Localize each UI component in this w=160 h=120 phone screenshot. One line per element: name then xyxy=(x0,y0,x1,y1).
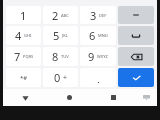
staticText: ABC xyxy=(61,13,69,18)
button[interactable]: *# xyxy=(6,68,41,87)
button[interactable]: 8 xyxy=(43,47,78,66)
staticText: 5 xyxy=(53,28,60,43)
button[interactable]: Switch keyboard xyxy=(135,89,157,106)
staticText: 1 xyxy=(20,8,27,23)
button[interactable]: 7 xyxy=(6,47,41,66)
staticText: MNO xyxy=(98,33,108,38)
button[interactable]: 5 xyxy=(43,26,78,45)
staticText: 4 xyxy=(15,28,22,43)
staticText: GHI xyxy=(24,33,32,38)
button[interactable]: 9 xyxy=(80,47,116,66)
button[interactable]: 6 xyxy=(80,26,116,45)
staticText: 7 xyxy=(14,49,21,64)
button[interactable]: 4 xyxy=(6,26,41,45)
button[interactable]: 2 xyxy=(43,6,78,24)
button[interactable]: . xyxy=(80,68,116,87)
button[interactable]: Hide keyboard xyxy=(3,89,47,106)
button[interactable]: 1 xyxy=(6,6,41,24)
staticText: WXYZ xyxy=(97,54,108,59)
staticText: 8 xyxy=(52,49,59,64)
staticText: JKL xyxy=(62,33,68,38)
staticText: 3 xyxy=(90,8,97,23)
staticText: 6 xyxy=(89,28,96,43)
button[interactable]: Enter xyxy=(118,68,154,87)
button[interactable]: Backspace xyxy=(118,47,154,66)
staticText: 0 xyxy=(54,70,61,85)
button[interactable]: Recent apps xyxy=(91,89,135,106)
button[interactable]: Dash xyxy=(118,6,154,24)
staticText: . xyxy=(97,73,100,85)
staticText: TUV xyxy=(61,54,69,59)
staticText: 9 xyxy=(88,49,95,64)
button[interactable]: Space xyxy=(118,26,154,45)
staticText: + xyxy=(63,73,68,83)
staticText: 2 xyxy=(52,8,59,23)
staticText: *# xyxy=(20,74,28,82)
staticText: PQRS xyxy=(23,54,34,59)
button[interactable]: 0 xyxy=(43,68,78,87)
staticText: DEF xyxy=(99,13,107,18)
button[interactable]: Home xyxy=(47,89,91,106)
button[interactable]: 3 xyxy=(80,6,116,24)
